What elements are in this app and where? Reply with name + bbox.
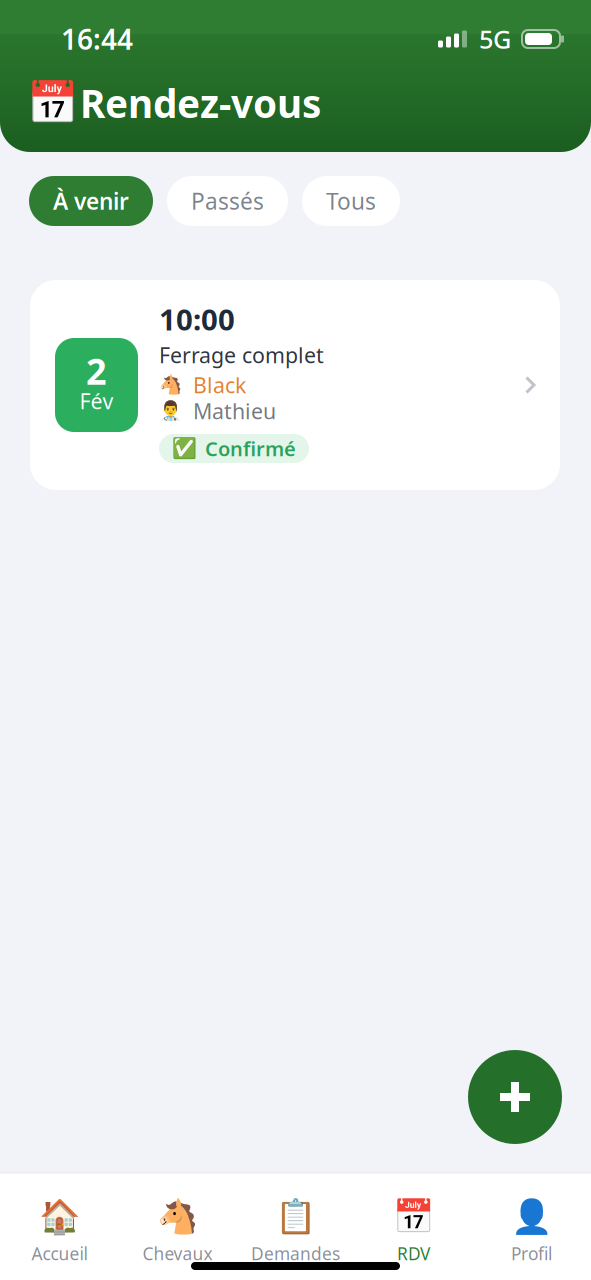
staticText: Ferrage complet bbox=[159, 341, 324, 369]
staticText: 10:00 bbox=[159, 299, 235, 338]
staticText: Rendez-vous bbox=[80, 77, 321, 129]
staticText: 2 bbox=[86, 347, 107, 395]
staticText: 🐴 bbox=[159, 374, 182, 396]
button[interactable]: 📅 bbox=[354, 1200, 472, 1262]
staticText: 16:44 bbox=[61, 20, 133, 58]
staticText: Mathieu bbox=[193, 397, 276, 425]
staticText: Profil bbox=[511, 1242, 552, 1265]
staticText: 🐴 bbox=[156, 1197, 198, 1236]
button[interactable]: 🏠 bbox=[0, 1200, 118, 1262]
staticText: RDV bbox=[397, 1242, 430, 1265]
staticText: 👤 bbox=[510, 1197, 552, 1236]
button[interactable]: 🐴 bbox=[118, 1200, 236, 1262]
staticText: 5G bbox=[479, 22, 511, 56]
staticText: 📅 bbox=[27, 79, 78, 127]
staticText: Black bbox=[193, 371, 246, 399]
button[interactable]: Tous bbox=[302, 176, 400, 226]
button[interactable]: 👤 bbox=[472, 1200, 590, 1262]
staticText: 📋 bbox=[274, 1197, 316, 1236]
staticText: À venir bbox=[53, 186, 129, 216]
button[interactable]: À venir bbox=[29, 176, 153, 226]
staticText: Tous bbox=[326, 186, 376, 216]
button[interactable]: 📋 bbox=[236, 1200, 354, 1262]
staticText: 👨‍⚕️ bbox=[159, 400, 182, 422]
staticText: Demandes bbox=[251, 1242, 340, 1265]
button[interactable]: Passés bbox=[167, 176, 288, 226]
staticText: ✅ bbox=[172, 437, 197, 460]
staticText: Passés bbox=[191, 186, 264, 216]
button[interactable]: 2 bbox=[30, 280, 560, 490]
staticText: 🏠 bbox=[38, 1197, 80, 1236]
staticText: 📅 bbox=[392, 1197, 434, 1236]
staticText: Chevaux bbox=[142, 1242, 212, 1265]
staticText: Accueil bbox=[31, 1242, 87, 1265]
button[interactable]: Ajouter un rendez-vous bbox=[468, 1050, 562, 1144]
staticText: Fév bbox=[79, 387, 113, 415]
staticText: Confirmé bbox=[205, 435, 296, 462]
